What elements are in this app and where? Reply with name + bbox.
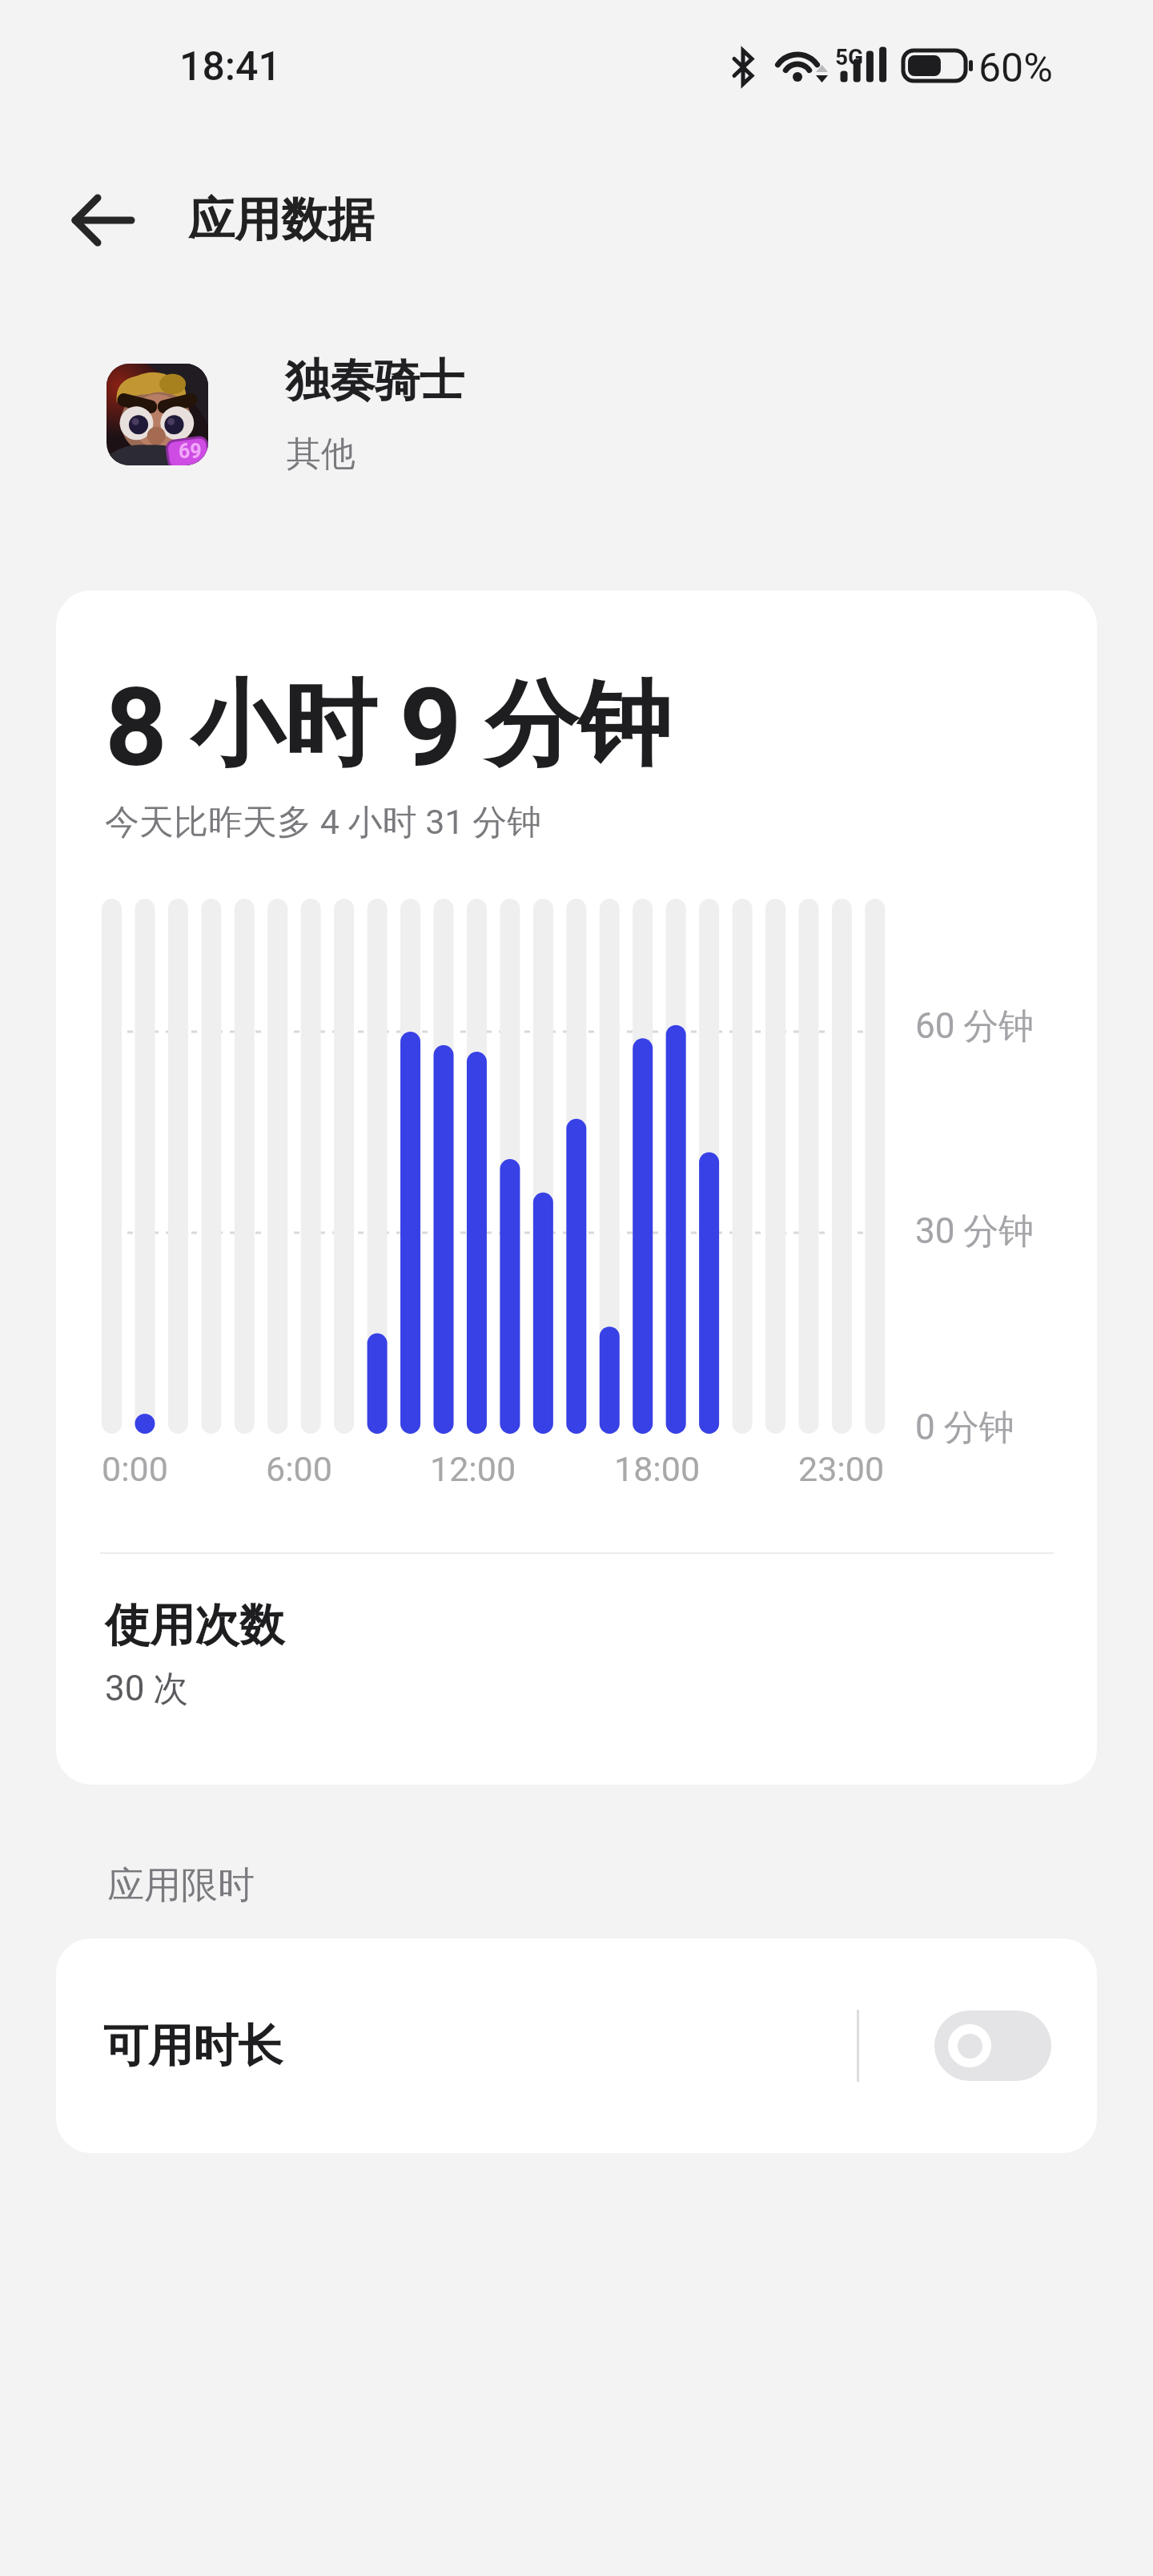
button[interactable]	[56, 184, 152, 256]
button[interactable]: 可用时长	[56, 1938, 1097, 2153]
staticText: 0 分钟	[915, 1406, 1014, 1450]
staticText: 30 次	[105, 1667, 189, 1711]
staticText: 23:00	[798, 1449, 885, 1489]
staticText: 18:00	[614, 1449, 701, 1489]
staticText: 应用数据	[188, 191, 374, 249]
staticText: 0:00	[102, 1449, 168, 1489]
staticText: 今天比昨天多 4 小时 31 分钟	[105, 801, 542, 844]
staticText: 60 分钟	[915, 1004, 1034, 1049]
staticText: 6:00	[266, 1449, 332, 1489]
staticText: 应用限时	[107, 1862, 255, 1909]
staticText: 8 小时 9 分钟	[105, 664, 671, 791]
staticText: 使用次数	[105, 1597, 284, 1654]
staticText: 5G	[835, 44, 864, 70]
staticText: 可用时长	[103, 2018, 283, 2075]
staticText: 60%	[978, 45, 1053, 92]
staticText: 独奏骑士	[285, 352, 464, 409]
staticText: 其他	[287, 433, 356, 476]
button[interactable]	[934, 2010, 1051, 2081]
staticText: 30 分钟	[915, 1210, 1034, 1254]
staticText: 12:00	[430, 1449, 516, 1489]
staticText: 69	[179, 440, 202, 463]
staticText: 18:41	[179, 43, 281, 91]
